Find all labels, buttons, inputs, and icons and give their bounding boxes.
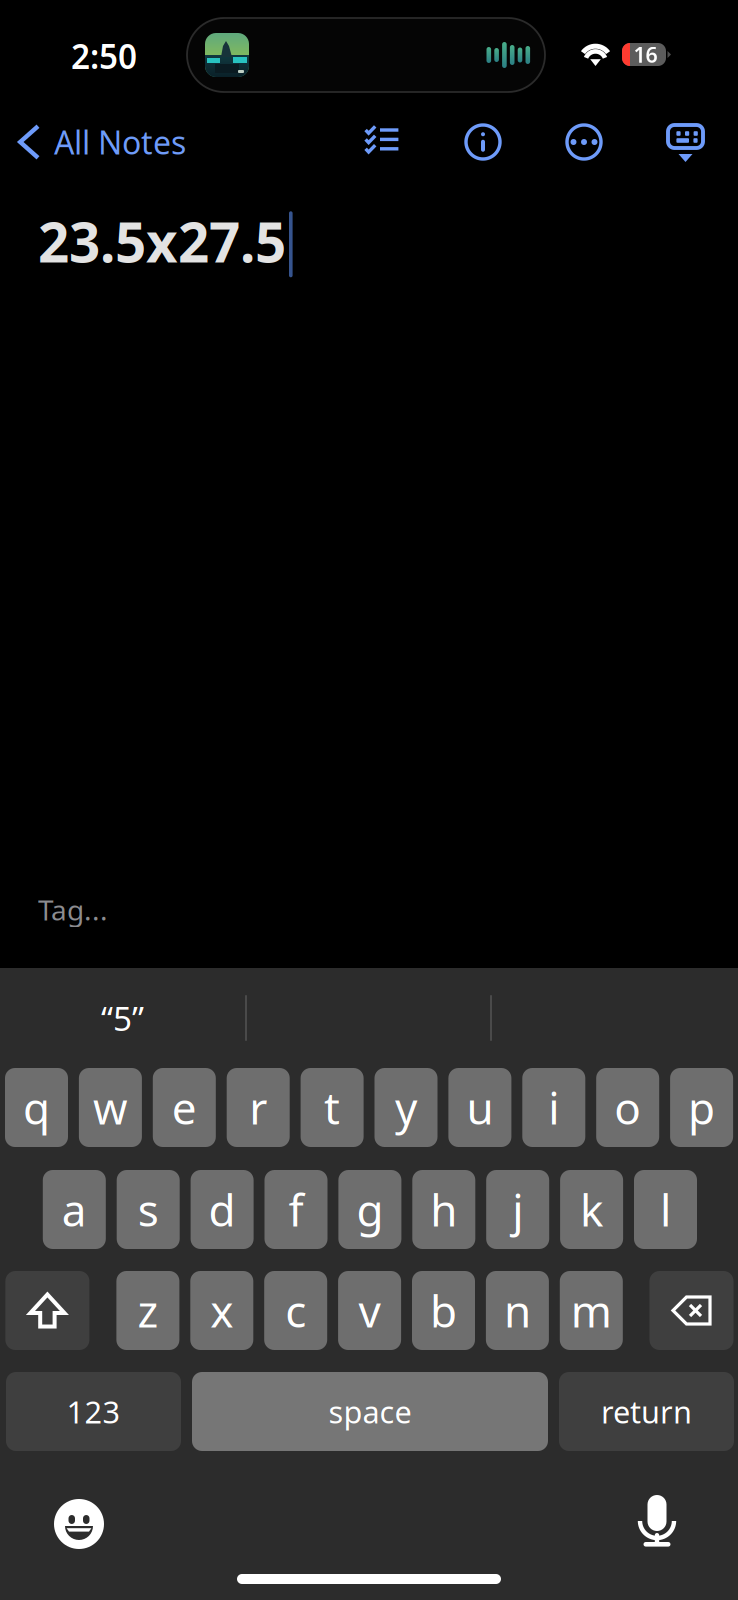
button[interactable]: g — [338, 1170, 401, 1249]
button[interactable]: Dictation — [628, 1485, 686, 1559]
button[interactable]: Emoji — [44, 1489, 114, 1559]
button[interactable]: q — [5, 1068, 68, 1147]
staticText: k — [580, 1180, 603, 1239]
staticText: l — [660, 1180, 671, 1239]
staticText: i — [548, 1078, 559, 1137]
button[interactable]: Delete — [649, 1271, 733, 1350]
button[interactable]: h — [412, 1170, 475, 1249]
button[interactable]: Shift — [5, 1271, 89, 1350]
staticText: s — [138, 1180, 159, 1239]
button[interactable]: w — [79, 1068, 142, 1147]
button[interactable]: k — [560, 1170, 623, 1249]
button[interactable]: e — [153, 1068, 216, 1147]
button[interactable]: s — [117, 1170, 180, 1249]
staticText: b — [430, 1281, 457, 1340]
staticText: z — [137, 1281, 158, 1340]
button[interactable]: d — [191, 1170, 254, 1249]
button[interactable]: o — [596, 1068, 659, 1147]
button[interactable]: b — [412, 1271, 475, 1350]
staticText: r — [249, 1078, 267, 1137]
button[interactable]: x — [190, 1271, 253, 1350]
staticText: e — [172, 1078, 197, 1137]
staticText: 16 — [633, 40, 657, 69]
button[interactable]: 123 — [6, 1372, 181, 1451]
staticText: c — [285, 1281, 306, 1340]
button[interactable]: n — [486, 1271, 549, 1350]
staticText: a — [62, 1180, 87, 1239]
staticText: o — [614, 1078, 641, 1137]
button[interactable]: j — [486, 1170, 549, 1249]
staticText: “5” — [101, 996, 144, 1040]
button[interactable]: v — [338, 1271, 401, 1350]
staticText: 23.5x27.5 — [38, 205, 286, 278]
button[interactable]: “5” — [0, 970, 245, 1066]
staticText: All Notes — [54, 121, 186, 163]
staticText: d — [209, 1180, 236, 1239]
staticText: q — [23, 1078, 50, 1137]
button[interactable]: u — [448, 1068, 511, 1147]
button[interactable]: f — [264, 1170, 327, 1249]
button[interactable]: p — [670, 1068, 733, 1147]
button[interactable]: t — [301, 1068, 364, 1147]
button[interactable]: m — [560, 1271, 623, 1350]
staticText: y — [395, 1078, 417, 1137]
button[interactable]: y — [374, 1068, 437, 1147]
staticText: p — [688, 1078, 715, 1137]
button[interactable]: z — [116, 1271, 179, 1350]
button[interactable]: c — [264, 1271, 327, 1350]
staticText: f — [288, 1180, 303, 1239]
staticText: Tag... — [38, 891, 108, 928]
staticText: u — [466, 1078, 493, 1137]
staticText: h — [430, 1180, 457, 1239]
staticText: return — [601, 1391, 692, 1432]
staticText: 2:50 — [71, 34, 137, 78]
staticText: v — [359, 1281, 381, 1340]
button[interactable]: space — [192, 1372, 548, 1451]
button[interactable]: a — [43, 1170, 106, 1249]
button[interactable]: Hide Keyboard — [658, 115, 716, 173]
staticText: n — [504, 1281, 531, 1340]
button[interactable]: More — [557, 115, 611, 169]
staticText: w — [93, 1078, 128, 1137]
button[interactable]: r — [227, 1068, 290, 1147]
staticText: 123 — [66, 1391, 120, 1432]
button[interactable]: Checklist — [354, 115, 409, 165]
button[interactable]: All Notes — [0, 112, 198, 172]
staticText: t — [324, 1078, 340, 1137]
staticText: g — [356, 1180, 383, 1239]
staticText: space — [328, 1391, 411, 1432]
button[interactable]: i — [522, 1068, 585, 1147]
button[interactable]: return — [559, 1372, 734, 1451]
staticText: x — [210, 1281, 233, 1340]
staticText: m — [571, 1281, 612, 1340]
staticText: j — [512, 1180, 523, 1239]
button[interactable]: Info — [456, 115, 510, 169]
button[interactable]: l — [634, 1170, 697, 1249]
